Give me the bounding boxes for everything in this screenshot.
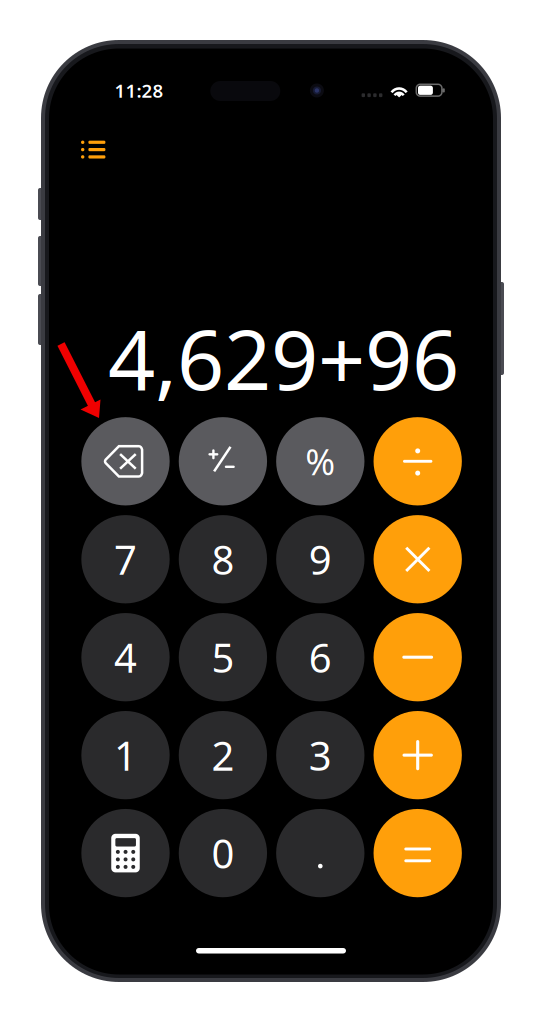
staticText: 11:28 — [114, 78, 163, 103]
staticText: 4 — [114, 631, 137, 684]
staticText: 1 — [114, 729, 137, 782]
button[interactable]: History — [74, 128, 118, 172]
staticText: 8 — [211, 533, 234, 586]
button[interactable]: Multiply — [374, 515, 462, 603]
button[interactable]: 0 — [179, 809, 267, 897]
button[interactable]: Calculator mode — [81, 809, 170, 897]
staticText: 3 — [309, 729, 332, 782]
button[interactable]: 3 — [276, 711, 364, 799]
button[interactable]: Plus minus — [179, 417, 267, 505]
staticText: 6 — [309, 631, 332, 684]
button[interactable]: % — [276, 417, 364, 505]
staticText: 5 — [211, 631, 234, 684]
button[interactable]: 9 — [276, 515, 364, 603]
staticText: 0 — [211, 826, 234, 880]
button[interactable]: Equals — [374, 809, 462, 897]
button[interactable]: 4 — [81, 613, 170, 701]
button[interactable]: Delete — [81, 417, 170, 505]
button[interactable]: 2 — [179, 711, 267, 799]
button[interactable]: Minus — [374, 613, 462, 701]
button[interactable]: 6 — [276, 613, 364, 701]
button[interactable]: Decimal point — [276, 809, 364, 897]
button[interactable]: 1 — [81, 711, 170, 799]
button[interactable]: 8 — [179, 515, 267, 603]
staticText: 9 — [309, 533, 332, 586]
button[interactable]: Divide — [374, 417, 462, 505]
staticText: 4,629+96 — [108, 303, 459, 413]
button[interactable]: 5 — [179, 613, 267, 701]
staticText: % — [305, 437, 335, 485]
staticText: 2 — [211, 729, 234, 782]
button[interactable]: Plus — [374, 711, 462, 799]
button[interactable]: 7 — [81, 515, 170, 603]
staticText: 7 — [114, 533, 137, 586]
